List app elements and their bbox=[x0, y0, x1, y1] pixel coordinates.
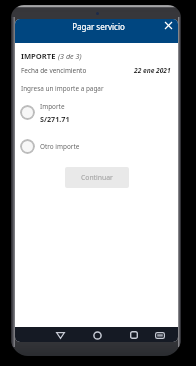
button[interactable]: Atras bbox=[53, 328, 67, 342]
staticText: Ingresa un importe a pagar bbox=[21, 84, 104, 93]
button[interactable]: Otro importe bbox=[20, 138, 173, 154]
staticText: Pagar servicio bbox=[72, 21, 125, 32]
button[interactable]: Recientes bbox=[127, 328, 141, 342]
staticText: IMPORTE bbox=[21, 51, 56, 61]
staticText: Continuar bbox=[81, 173, 113, 182]
button[interactable]: Inicio bbox=[90, 328, 104, 342]
staticText: Otro importe bbox=[40, 142, 80, 151]
staticText: Importe bbox=[40, 102, 65, 111]
button[interactable]: Teclado bbox=[153, 328, 167, 342]
button[interactable]: Cerrar bbox=[161, 19, 175, 32]
button[interactable]: Importe bbox=[20, 98, 173, 127]
staticText: (3 de 3) bbox=[58, 51, 82, 61]
staticText: S/271.71 bbox=[40, 114, 70, 124]
staticText: 22 ene 2021 bbox=[134, 66, 171, 75]
staticText: Fecha de vencimiento bbox=[21, 66, 87, 75]
button[interactable]: Continuar bbox=[65, 167, 129, 188]
